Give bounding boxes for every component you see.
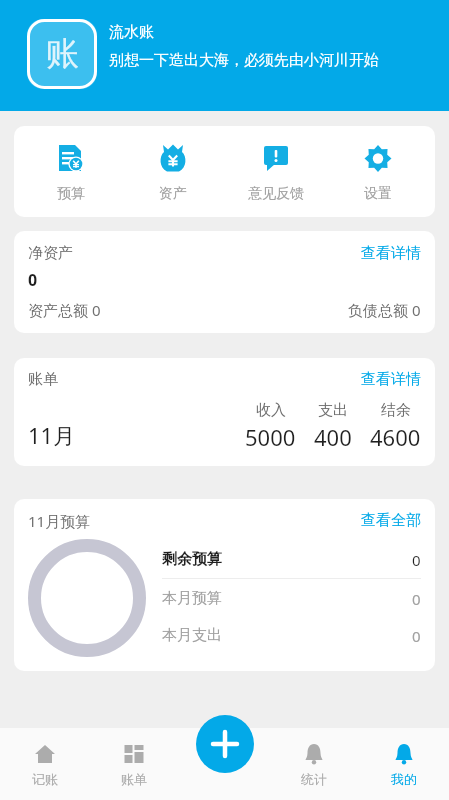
staticText: 意见反馈 bbox=[248, 185, 304, 203]
staticText: 查看详情 bbox=[361, 244, 421, 263]
staticText: 统计 bbox=[301, 771, 327, 787]
staticText: 11月 bbox=[28, 420, 76, 450]
staticText: 收入 bbox=[256, 401, 286, 420]
staticText: 设置 bbox=[364, 185, 392, 203]
button[interactable]: 净资产 bbox=[14, 231, 435, 333]
staticText: 流水账 bbox=[109, 23, 154, 42]
staticText: 账 bbox=[46, 33, 79, 75]
button[interactable]: 资产 bbox=[128, 140, 218, 205]
staticText: 本月支出 bbox=[162, 626, 222, 645]
staticText: 11月预算 bbox=[28, 511, 91, 531]
staticText: 本月预算 bbox=[162, 589, 222, 608]
staticText: 0 bbox=[412, 589, 421, 609]
staticText: 预算 bbox=[57, 185, 85, 203]
staticText: 结余 bbox=[381, 401, 411, 420]
staticText: 账单 bbox=[28, 370, 58, 389]
staticText: 0 bbox=[28, 269, 38, 291]
staticText: 查看详情 bbox=[361, 370, 421, 389]
staticText: 0 bbox=[412, 550, 421, 570]
button[interactable]: 设置 bbox=[333, 140, 423, 205]
staticText: 资产总额 0 bbox=[28, 300, 101, 320]
staticText: 别想一下造出大海，必须先由小河川开始 bbox=[109, 51, 379, 70]
button[interactable]: 账单 bbox=[14, 358, 435, 466]
button[interactable]: 统计 bbox=[269, 728, 359, 800]
button[interactable]: 本月预算 bbox=[162, 589, 421, 609]
staticText: 净资产 bbox=[28, 244, 73, 263]
button[interactable]: 预算 bbox=[26, 140, 116, 205]
button[interactable]: 意见反馈 bbox=[231, 140, 321, 205]
button[interactable]: 查看全部 bbox=[361, 511, 421, 530]
staticText: 4600 bbox=[370, 422, 421, 452]
staticText: 账单 bbox=[121, 771, 147, 787]
button[interactable]: 剩余预算 bbox=[162, 550, 421, 570]
button[interactable]: Add record bbox=[196, 715, 254, 773]
button[interactable]: 我的 bbox=[359, 728, 449, 800]
staticText: 负债总额 0 bbox=[348, 300, 421, 320]
button[interactable]: 本月支出 bbox=[162, 626, 421, 646]
button[interactable]: 账单 bbox=[89, 728, 179, 800]
button[interactable]: 记账 bbox=[0, 728, 89, 800]
staticText: 剩余预算 bbox=[162, 550, 222, 569]
staticText: 记账 bbox=[32, 771, 58, 787]
staticText: 支出 bbox=[318, 401, 348, 420]
staticText: 5000 bbox=[245, 422, 296, 452]
staticText: 400 bbox=[314, 422, 352, 452]
staticText: 资产 bbox=[159, 185, 187, 203]
staticText: 我的 bbox=[391, 771, 417, 787]
staticText: 0 bbox=[412, 626, 421, 646]
